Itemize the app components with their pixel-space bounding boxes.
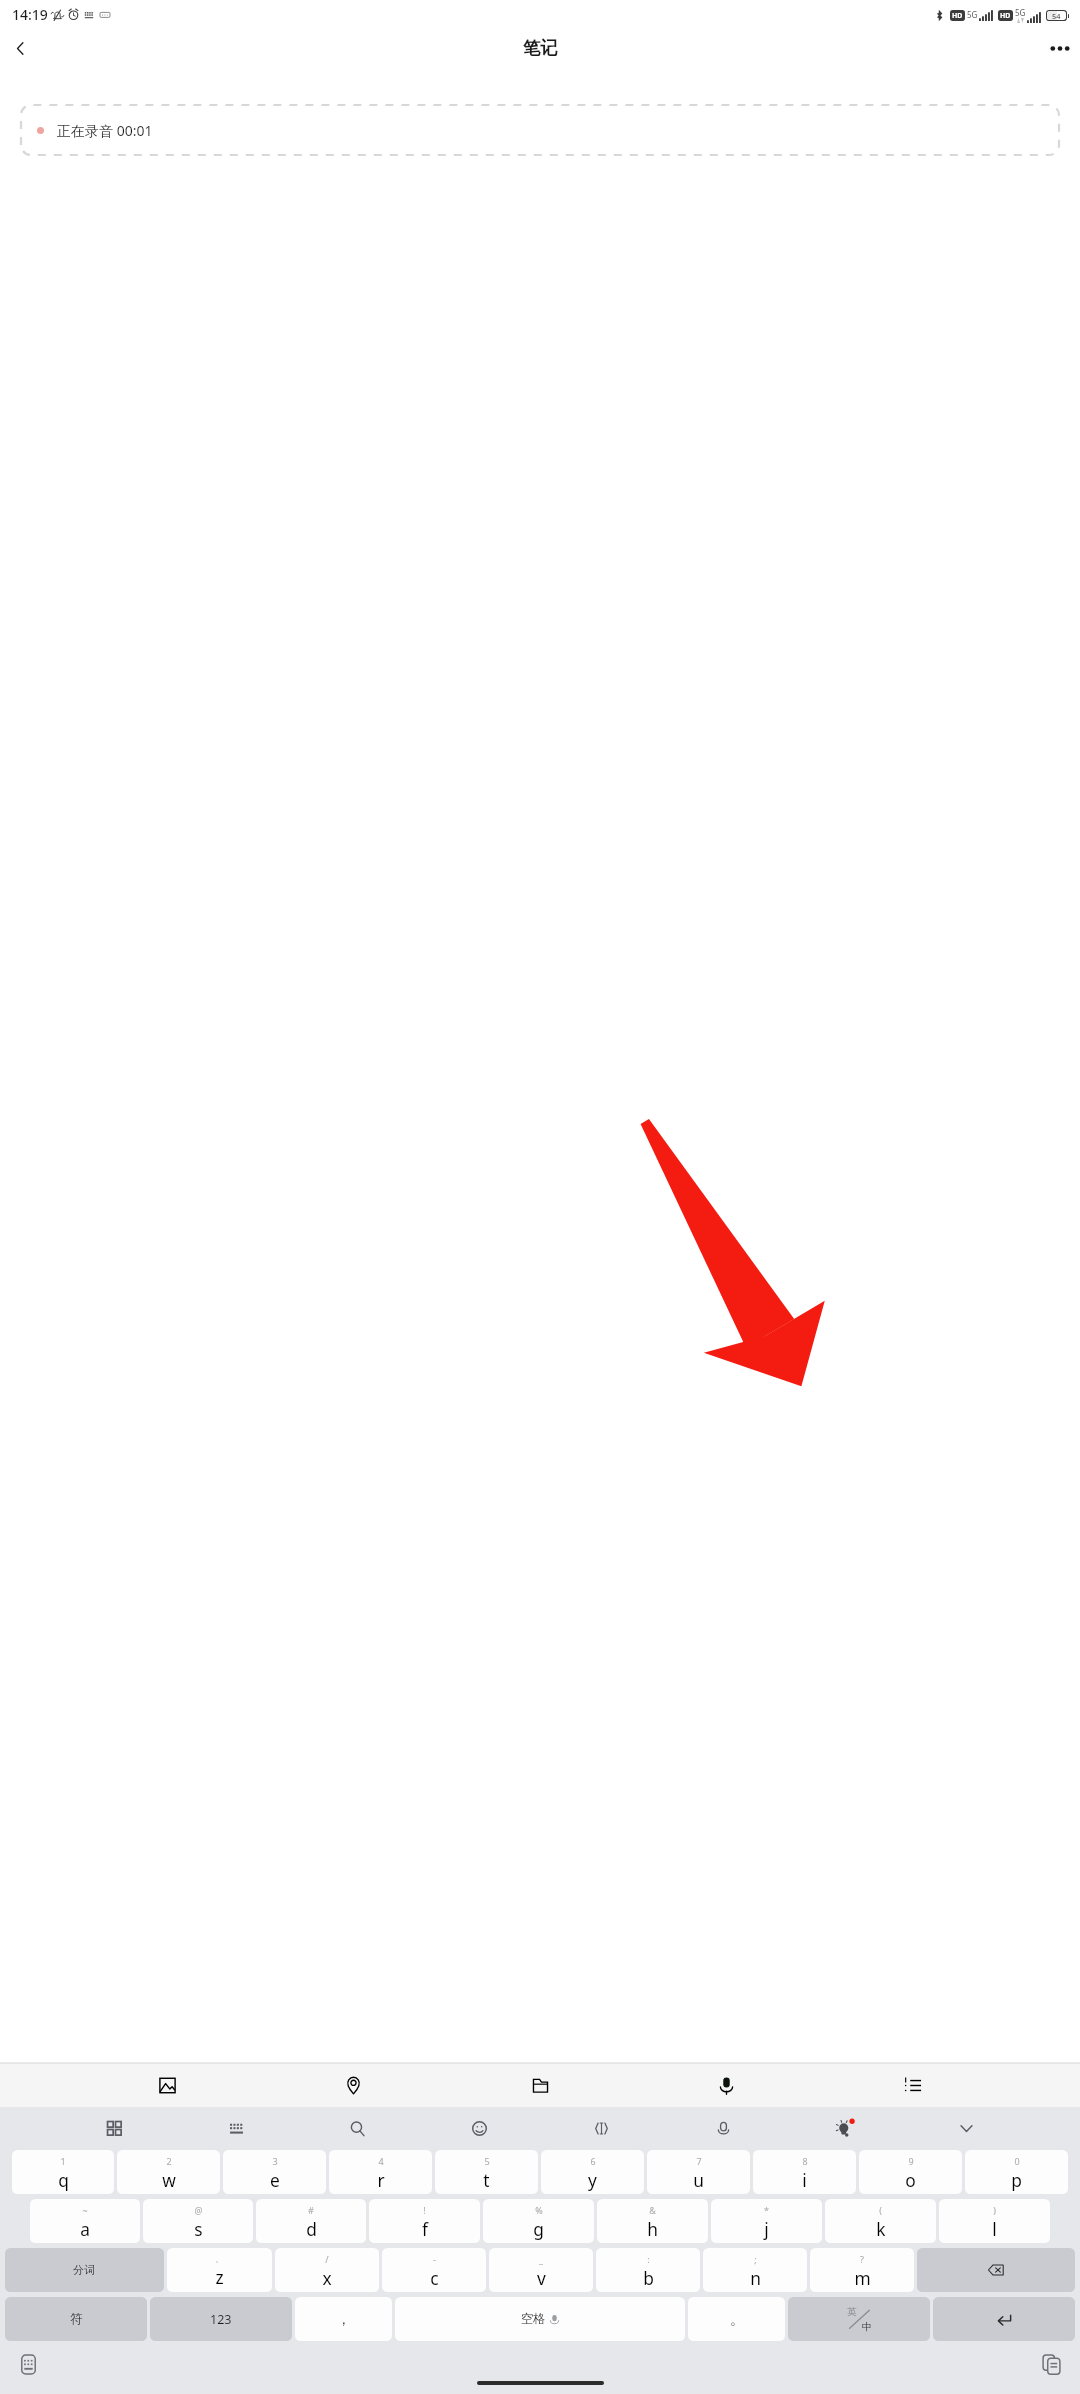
button[interactable]: Enter <box>933 2297 1075 2341</box>
button[interactable]: 0 <box>965 2150 1068 2194</box>
staticText: ( <box>879 2204 882 2216</box>
staticText: c <box>430 2266 439 2290</box>
staticText: g <box>533 2217 544 2241</box>
button[interactable]: 正在录音 00:01 <box>21 105 1059 155</box>
staticText: : <box>647 2253 650 2265</box>
staticText: y <box>588 2168 597 2192</box>
staticText: 分词 <box>73 2263 96 2277</box>
staticText: 3 <box>272 2155 278 2167</box>
staticText: b <box>643 2266 654 2290</box>
button[interactable]: _ <box>489 2248 593 2292</box>
staticText: p <box>1011 2168 1022 2192</box>
button[interactable]: Backspace <box>917 2248 1075 2292</box>
staticText: a <box>80 2217 90 2241</box>
button[interactable]: ~ <box>30 2199 140 2243</box>
button[interactable]: ) <box>939 2199 1050 2243</box>
staticText: 英 <box>847 2306 857 2318</box>
staticText: ? <box>860 2253 864 2265</box>
button[interactable]: % <box>483 2199 594 2243</box>
button[interactable]: Cursor control <box>585 2112 617 2144</box>
staticText: z <box>215 2265 224 2289</box>
staticText: h <box>647 2217 658 2241</box>
button[interactable]: * <box>711 2199 822 2243</box>
button[interactable]: Search <box>341 2112 373 2144</box>
button[interactable]: Clipboard <box>1038 2351 1065 2378</box>
button[interactable]: - <box>382 2248 486 2292</box>
button[interactable]: ? <box>810 2248 914 2292</box>
button[interactable]: 8 <box>753 2150 856 2194</box>
staticText: m <box>854 2266 871 2290</box>
staticText: 正在录音 00:01 <box>57 121 153 140</box>
staticText: 笔记 <box>523 37 558 59</box>
button[interactable]: : <box>596 2248 700 2292</box>
button[interactable]: Voice input <box>707 2112 739 2144</box>
staticText: ~ <box>82 2204 88 2216</box>
staticText: 6 <box>590 2155 596 2167</box>
button[interactable]: Keyboard layout <box>220 2112 252 2144</box>
button[interactable]: Switch input method <box>15 2351 42 2378</box>
button[interactable]: Tips <box>828 2112 860 2144</box>
staticText: w <box>162 2168 176 2192</box>
button[interactable]: Panels <box>98 2112 130 2144</box>
staticText: 8 <box>802 2155 808 2167</box>
button[interactable]: & <box>597 2199 708 2243</box>
button[interactable]: 123 <box>150 2297 292 2341</box>
staticText: - <box>433 2253 436 2265</box>
staticText: ) <box>993 2204 996 2216</box>
button[interactable]: Insert image <box>149 2067 186 2104</box>
button[interactable]: Attach file <box>522 2067 559 2104</box>
staticText: % <box>535 2204 543 2216</box>
button[interactable]: 符 <box>5 2297 147 2341</box>
button[interactable]: Emoji <box>463 2112 495 2144</box>
staticText: i <box>802 2168 807 2192</box>
staticText: 空格 <box>521 2311 546 2327</box>
staticText: 14:19 <box>12 5 48 24</box>
button[interactable]: ( <box>825 2199 936 2243</box>
button[interactable]: 3 <box>223 2150 326 2194</box>
staticText: 7 <box>696 2155 702 2167</box>
button[interactable]: Numbered list <box>894 2067 931 2104</box>
button[interactable]: 6 <box>541 2150 644 2194</box>
staticText: 2 <box>166 2155 172 2167</box>
button[interactable]: / <box>275 2248 379 2292</box>
staticText: 9 <box>908 2155 914 2167</box>
button[interactable]: 1 <box>12 2150 114 2194</box>
button[interactable]: Hide keyboard <box>950 2112 982 2144</box>
button[interactable]: ; <box>703 2248 807 2292</box>
staticText: 5 <box>484 2155 490 2167</box>
staticText: HD <box>1000 11 1011 21</box>
staticText: # <box>308 2204 314 2216</box>
staticText: ， <box>337 2311 351 2328</box>
staticText: t <box>483 2168 490 2192</box>
staticText: l <box>992 2217 997 2241</box>
button[interactable]: 。 <box>688 2297 785 2341</box>
button[interactable]: 2 <box>117 2150 220 2194</box>
button[interactable]: 5 <box>435 2150 538 2194</box>
button[interactable]: Add location <box>335 2067 372 2104</box>
staticText: n <box>750 2266 761 2290</box>
button[interactable]: ， <box>295 2297 392 2341</box>
button[interactable]: 、 <box>167 2248 272 2292</box>
staticText: ! <box>423 2204 426 2216</box>
button[interactable]: 4 <box>329 2150 432 2194</box>
staticText: 4 <box>378 2155 384 2167</box>
staticText: 、 <box>215 2253 224 2264</box>
staticText: 5G <box>1015 7 1026 18</box>
staticText: f <box>422 2217 428 2241</box>
button[interactable]: 7 <box>647 2150 750 2194</box>
staticText: x <box>322 2266 332 2290</box>
button[interactable]: # <box>256 2199 366 2243</box>
staticText: v <box>537 2266 546 2290</box>
staticText: HD <box>952 11 963 21</box>
staticText: q <box>58 2168 69 2192</box>
button[interactable]: Back <box>5 33 35 63</box>
button[interactable]: @ <box>143 2199 253 2243</box>
button[interactable]: 9 <box>859 2150 962 2194</box>
button[interactable]: ! <box>369 2199 480 2243</box>
button[interactable]: More options <box>1045 33 1075 63</box>
staticText: 0 <box>1014 2155 1020 2167</box>
button[interactable]: Voice recording <box>708 2067 745 2104</box>
button[interactable]: 分词 <box>5 2248 164 2292</box>
button[interactable]: 空格 <box>395 2297 685 2341</box>
button[interactable]: Switch English Chinese <box>788 2297 930 2341</box>
